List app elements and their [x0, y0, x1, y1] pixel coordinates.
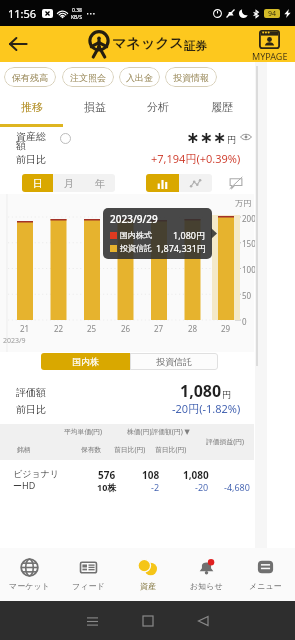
staticText: 2023/9/29: [110, 212, 158, 226]
staticText: 証券: [184, 39, 207, 53]
button[interactable]: Comment: [226, 173, 246, 193]
button[interactable]: 投資信託: [130, 353, 218, 370]
button[interactable]: Bar chart: [146, 174, 179, 192]
staticText: 投資信託: [156, 356, 192, 367]
button[interactable]: 履歴: [190, 90, 254, 124]
staticText: 1,080: [180, 380, 222, 402]
staticText: 年: [95, 177, 105, 190]
staticText: 2023/9: [3, 336, 26, 346]
button[interactable]: 年: [84, 174, 115, 192]
staticText: 150: [242, 238, 256, 249]
button[interactable]: 保有残高: [4, 67, 56, 87]
staticText: 576: [98, 468, 116, 482]
button[interactable]: 資産: [118, 548, 177, 601]
button[interactable]: 国内株: [41, 353, 130, 370]
staticText: 推移: [21, 100, 43, 114]
button[interactable]: Back: [3, 29, 33, 59]
staticText: 28: [188, 323, 198, 334]
button[interactable]: Line chart: [179, 174, 212, 192]
staticText: 資産総額: [16, 130, 48, 152]
staticText: 履歴: [211, 100, 233, 114]
staticText: マーケット: [9, 581, 50, 591]
staticText: お知らせ: [190, 581, 223, 591]
staticText: 1,080円: [173, 229, 206, 241]
staticText: 1,874,331円: [156, 242, 206, 254]
staticText: 0.38: [72, 7, 82, 14]
staticText: 前日比(円): [155, 445, 187, 454]
staticText: -20: [195, 481, 209, 493]
staticText: -2: [151, 481, 160, 493]
button[interactable]: Recent apps: [65, 606, 120, 636]
staticText: -4,680: [224, 481, 250, 493]
button[interactable]: 推移: [0, 90, 63, 124]
staticText: 株価(円)評価額(円) ▼: [127, 427, 190, 436]
staticText: 平均単価(円): [64, 427, 103, 436]
button[interactable]: 分析: [126, 90, 190, 124]
staticText: 円: [222, 389, 231, 400]
staticText: ーHD: [13, 479, 36, 491]
staticText: メニュー: [249, 581, 282, 591]
button[interactable]: フィード: [59, 548, 118, 601]
staticText: ビジョナリ: [13, 468, 60, 479]
staticText: 分析: [147, 100, 169, 114]
staticText: 資産: [140, 581, 156, 591]
button[interactable]: 入出金: [119, 67, 160, 87]
button[interactable]: 月: [53, 174, 84, 192]
staticText: 月: [64, 177, 74, 190]
staticText: 11:56: [8, 6, 37, 21]
button[interactable]: マーケット: [0, 548, 59, 601]
staticText: 0: [242, 316, 247, 327]
staticText: 銘柄: [17, 445, 31, 454]
staticText: 26: [121, 323, 131, 334]
staticText: 200: [242, 213, 256, 224]
button[interactable]: 注文照会: [62, 67, 114, 87]
staticText: 評価損益(円): [206, 437, 245, 446]
staticText: ∗∗∗: [186, 128, 227, 147]
staticText: 円: [227, 134, 236, 145]
staticText: マネックス: [112, 35, 184, 53]
button[interactable]: Home: [120, 606, 175, 636]
staticText: 万円: [235, 198, 251, 208]
staticText: 108: [142, 468, 160, 482]
staticText: ⋯: [86, 8, 96, 20]
staticText: -20円(-1.82%): [172, 401, 241, 416]
button[interactable]: 投資情報: [165, 67, 217, 87]
staticText: 投資情報: [173, 72, 209, 83]
button[interactable]: お知らせ: [177, 548, 236, 601]
staticText: 10株: [97, 481, 117, 493]
staticText: 22: [54, 323, 64, 334]
staticText: 25: [87, 323, 97, 334]
staticText: 国内株式: [120, 230, 152, 240]
button[interactable]: My page: [249, 30, 290, 62]
staticText: 前日比: [16, 153, 46, 166]
staticText: MYPAGE: [252, 50, 288, 62]
staticText: 前日比: [16, 403, 46, 416]
staticText: 損益: [84, 100, 106, 114]
staticText: 1,080: [183, 468, 209, 482]
staticText: 保有数: [81, 445, 102, 454]
button[interactable]: 損益: [63, 90, 126, 124]
staticText: 入出金: [126, 72, 153, 83]
staticText: 21: [20, 323, 30, 334]
staticText: +7,194円(+0.39%): [151, 151, 241, 166]
staticText: KB/S: [71, 14, 82, 21]
staticText: 29: [221, 323, 231, 334]
staticText: 投資信託: [120, 243, 152, 253]
staticText: 保有残高: [12, 72, 48, 83]
button[interactable]: 日: [22, 174, 53, 192]
staticText: 94: [268, 9, 277, 18]
button[interactable]: メニュー: [236, 548, 295, 601]
button[interactable]: ビジョナリ: [0, 460, 254, 495]
button[interactable]: Back: [175, 606, 230, 636]
staticText: フィード: [72, 581, 105, 591]
staticText: 日: [33, 177, 43, 190]
staticText: 評価額: [16, 386, 46, 399]
staticText: 100: [242, 264, 256, 275]
staticText: 前日比(円): [114, 445, 146, 454]
staticText: 注文照会: [70, 72, 106, 83]
staticText: 国内株: [72, 356, 99, 367]
staticText: 27: [154, 323, 164, 334]
staticText: 50: [242, 290, 252, 301]
